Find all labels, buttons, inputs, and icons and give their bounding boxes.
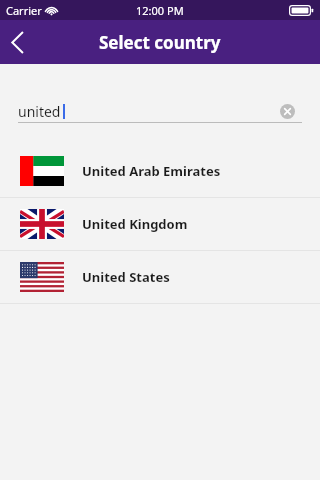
button[interactable]: United Arab Emirates — [0, 145, 320, 197]
button[interactable]: United States — [0, 251, 320, 303]
staticText: United Arab Emirates — [82, 162, 221, 180]
staticText: Select country — [99, 31, 221, 54]
staticText: United States — [82, 268, 170, 286]
staticText: 12:00 PM — [136, 3, 184, 18]
button[interactable]: united — [18, 98, 280, 124]
staticText: united — [18, 102, 61, 121]
staticText: Carrier — [6, 3, 42, 18]
button[interactable]: Clear text — [271, 95, 303, 127]
button[interactable]: United Kingdom — [0, 198, 320, 250]
staticText: United Kingdom — [82, 215, 188, 233]
button[interactable]: Back — [0, 20, 46, 64]
